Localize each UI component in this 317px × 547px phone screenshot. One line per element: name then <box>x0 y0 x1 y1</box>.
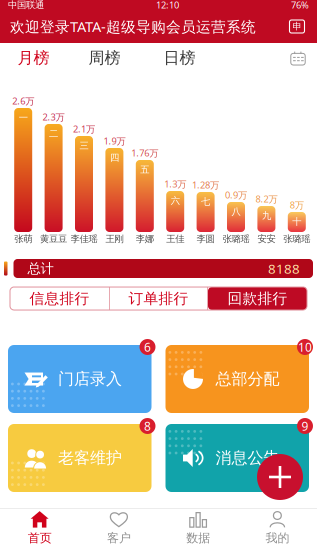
staticText: 1.3万 <box>164 178 186 190</box>
staticText: 1.9万 <box>103 135 125 147</box>
staticText: 76% <box>291 0 309 11</box>
staticText: 老客维护 <box>58 448 122 468</box>
staticText: 6 <box>144 339 151 355</box>
staticText: 安安 <box>257 233 275 245</box>
staticText: 中国联通 <box>8 0 44 11</box>
button[interactable]: 申请 <box>285 14 309 38</box>
staticText: 订单排行 <box>128 289 188 307</box>
staticText: 总计 <box>27 260 53 277</box>
button[interactable]: 日榜 <box>142 43 217 73</box>
button[interactable]: 老客维护 <box>8 424 151 492</box>
button[interactable]: 周榜 <box>67 43 142 73</box>
staticText: 0.9万 <box>225 189 247 201</box>
staticText: 8188 <box>268 260 300 277</box>
staticText: 欢迎登录TATA-超级导购会员运营系统 <box>10 17 256 36</box>
staticText: 一 <box>19 112 28 123</box>
staticText: 门店录入 <box>58 369 122 389</box>
button[interactable]: 数据 <box>158 505 238 547</box>
staticText: 张萌 <box>14 233 32 245</box>
staticText: 客户 <box>107 531 131 545</box>
button[interactable]: 门店录入 <box>8 345 151 413</box>
button[interactable]: 新增 <box>257 454 303 500</box>
staticText: 10 <box>298 339 312 355</box>
staticText: 三 <box>79 140 88 151</box>
staticText: 四 <box>110 152 119 163</box>
staticText: 张璐瑶 <box>222 233 249 245</box>
staticText: 2.6万 <box>12 95 34 107</box>
staticText: 12:10 <box>156 0 179 11</box>
staticText: 王刚 <box>105 233 123 245</box>
staticText: 八 <box>231 206 240 217</box>
staticText: 五 <box>140 164 149 175</box>
staticText: 黄豆豆 <box>40 233 67 245</box>
staticText: 张璐瑶 <box>283 233 310 245</box>
staticText: 月榜 <box>17 48 49 68</box>
staticText: 日榜 <box>163 48 195 68</box>
staticText: 信息排行 <box>29 289 89 307</box>
staticText: 消息公告 <box>215 448 279 468</box>
staticText: 二 <box>49 128 58 139</box>
button[interactable]: 信息排行 <box>10 287 109 310</box>
staticText: 2.1万 <box>73 123 95 135</box>
staticText: 李圆 <box>197 233 215 245</box>
button[interactable]: 月榜 <box>0 43 67 73</box>
button[interactable]: 订单排行 <box>109 287 208 310</box>
staticText: 十 <box>292 216 301 227</box>
staticText: 9 <box>301 418 308 434</box>
staticText: 六 <box>171 195 180 206</box>
button[interactable]: 我的 <box>238 505 317 547</box>
button[interactable]: 总部分配 <box>165 345 309 413</box>
button[interactable]: 选择日期 <box>283 43 313 73</box>
staticText: 周榜 <box>88 48 120 68</box>
staticText: 李佳瑶 <box>70 233 97 245</box>
staticText: 李娜 <box>136 233 154 245</box>
staticText: 8万 <box>290 199 304 211</box>
staticText: 2.3万 <box>43 111 65 123</box>
button[interactable]: 客户 <box>79 505 158 547</box>
staticText: 1.76万 <box>131 147 158 159</box>
button[interactable]: 消息公告 <box>165 424 309 492</box>
staticText: 数据 <box>186 531 210 545</box>
staticText: 王佳 <box>166 233 184 245</box>
staticText: 七 <box>201 196 210 207</box>
staticText: 申 <box>292 21 301 32</box>
staticText: 8.2万 <box>255 193 277 205</box>
staticText: 总部分配 <box>215 369 279 389</box>
staticText: 8 <box>144 418 151 434</box>
button[interactable]: 回款排行 <box>208 287 307 310</box>
staticText: 1.28万 <box>192 179 219 191</box>
staticText: 首页 <box>28 531 52 545</box>
staticText: 九 <box>262 210 271 221</box>
staticText: 我的 <box>265 531 289 545</box>
button[interactable]: 首页 <box>0 505 79 547</box>
staticText: 回款排行 <box>227 289 287 307</box>
